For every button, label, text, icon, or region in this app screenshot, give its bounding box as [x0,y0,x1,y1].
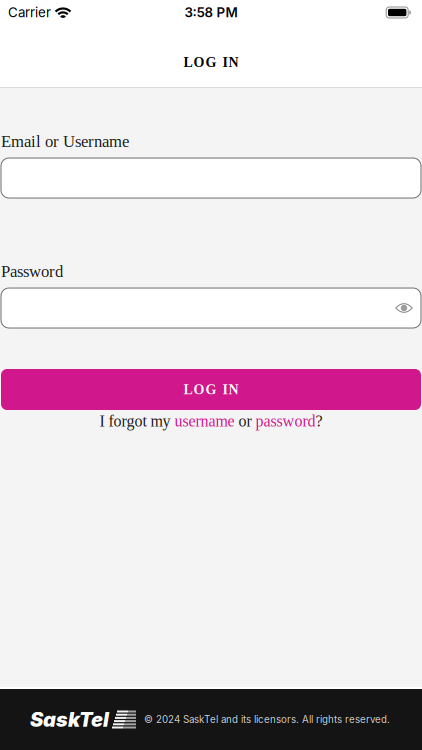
staticText: L O G I N [183,54,238,70]
staticText: or [234,412,255,430]
staticText: username [174,412,234,430]
button[interactable]: password [255,412,315,430]
staticText: ? [315,412,322,430]
button[interactable] [1,158,421,198]
button[interactable]: username [174,412,234,430]
staticText: password [255,412,315,430]
button[interactable]: L O G I N [1,369,421,410]
staticText: © 2024 SaskTel and its licensors. All ri… [144,714,390,725]
staticText: Carrier [8,4,51,20]
button[interactable] [1,288,421,328]
staticText: L O G I N [183,382,238,397]
staticText: Email or Username [1,132,129,151]
staticText: Password [1,262,63,281]
staticText: SaskTel [30,707,109,732]
staticText: I forgot my [99,412,174,430]
staticText: 3:58 PM [184,4,237,20]
